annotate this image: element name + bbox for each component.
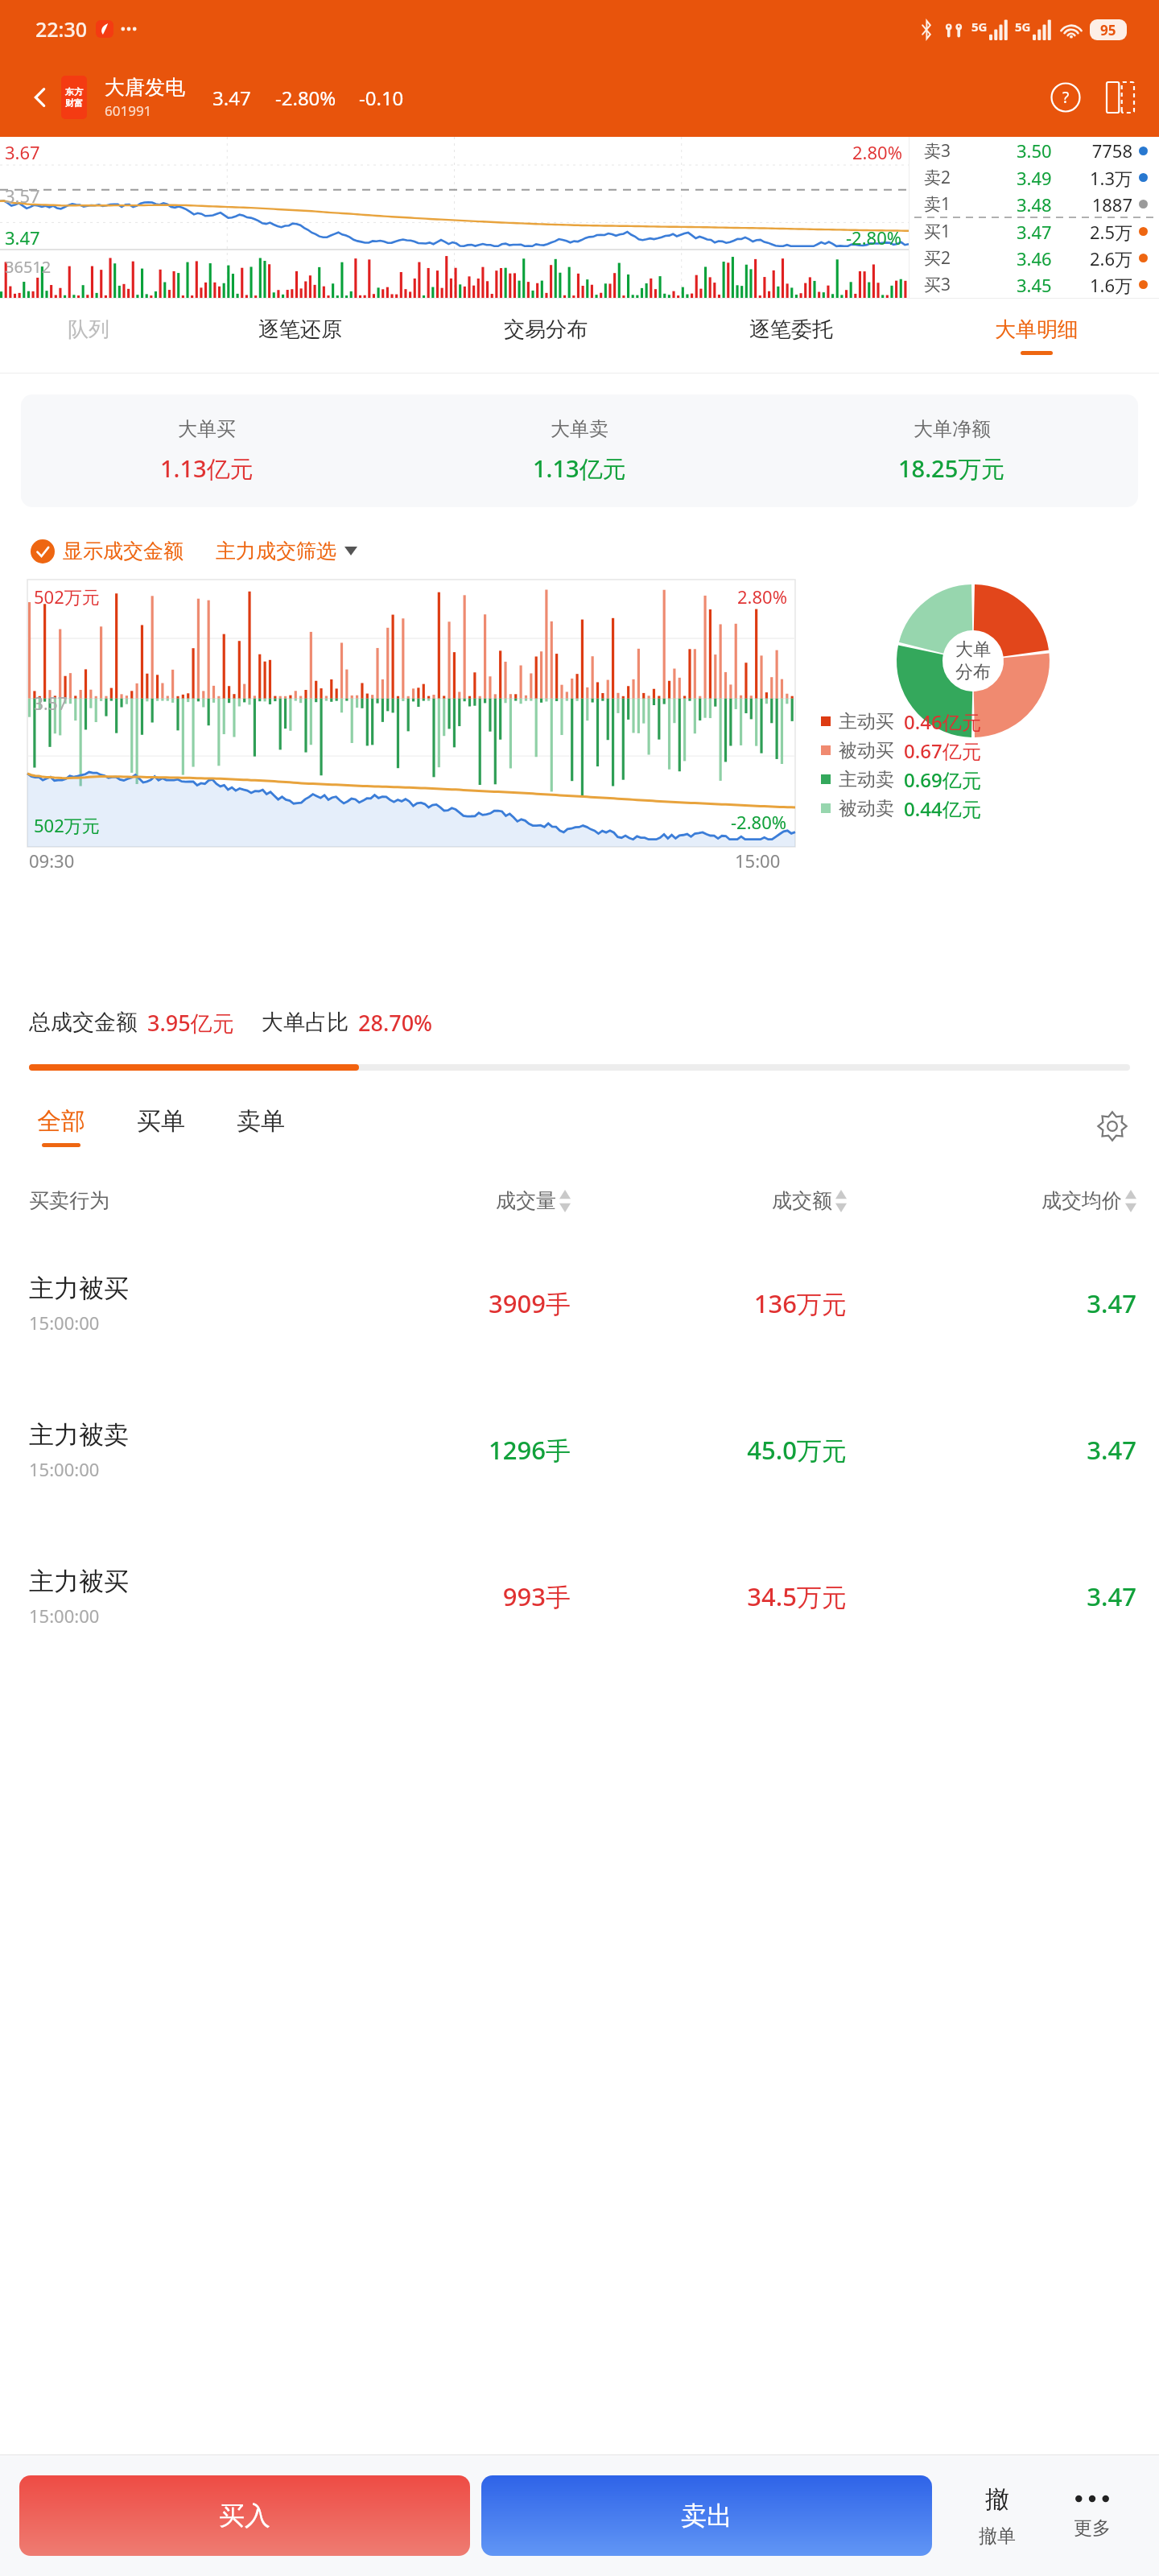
button[interactable]: 帮助 xyxy=(1046,78,1085,117)
staticText: 主力被卖 xyxy=(29,1419,129,1451)
staticText: 总成交金额 xyxy=(29,1009,138,1036)
button[interactable]: 买2 xyxy=(909,245,1159,271)
staticText: 被动买 xyxy=(839,739,894,762)
staticText: 7758 xyxy=(1066,138,1132,163)
button[interactable]: 设置 xyxy=(1090,1104,1135,1149)
button[interactable]: 逐笔委托 xyxy=(668,299,914,373)
button[interactable]: 买3 xyxy=(909,271,1159,298)
staticText: 2.5万 xyxy=(1066,220,1132,244)
staticText: -0.10 xyxy=(359,85,404,111)
button[interactable]: 大单明细 xyxy=(914,299,1159,373)
button[interactable]: 撤 xyxy=(950,2455,1045,2576)
staticText: 逐笔还原 xyxy=(258,316,342,343)
staticText: 3.49 xyxy=(1017,166,1052,190)
staticText: 3.47 xyxy=(847,1433,1136,1467)
staticText: 买入 xyxy=(219,2500,270,2532)
staticText: 主力被买 xyxy=(29,1566,129,1597)
staticText: 大唐发电 xyxy=(105,75,185,100)
staticText: 卖出 xyxy=(681,2500,732,2532)
staticText: 45.0万元 xyxy=(571,1433,847,1467)
staticText: 大单 xyxy=(955,638,991,661)
staticText: 3.67 xyxy=(5,140,40,164)
button[interactable]: 全部 xyxy=(27,1106,95,1147)
staticText: 0.69亿元 xyxy=(904,766,981,793)
staticText: 1887 xyxy=(1066,192,1132,217)
button[interactable]: 大单买 xyxy=(21,394,1138,507)
staticText: 3.46 xyxy=(1017,246,1052,270)
staticText: 1.13亿元 xyxy=(160,452,254,485)
staticText: 2.80% xyxy=(737,584,787,609)
staticText: 卖1 xyxy=(924,192,951,216)
staticText: 5G xyxy=(971,19,988,35)
staticText: 成交量 xyxy=(496,1188,556,1213)
staticText: 36512 xyxy=(5,256,52,278)
button[interactable]: 卖出 xyxy=(481,2475,932,2556)
staticText: 3.50 xyxy=(1017,138,1052,163)
staticText: 被动卖 xyxy=(839,797,894,820)
button[interactable]: 队列 xyxy=(0,299,177,373)
button[interactable]: 主动卖 xyxy=(821,765,1143,794)
staticText: 3.48 xyxy=(1017,192,1052,217)
staticText: 买2 xyxy=(924,246,951,270)
button[interactable]: 卖单 xyxy=(227,1106,295,1147)
button[interactable]: 主力被买 xyxy=(0,1523,1159,1670)
button[interactable]: 交易分布 xyxy=(423,299,668,373)
staticText: 大单占比 xyxy=(262,1009,349,1036)
staticText: 5G xyxy=(1015,19,1031,35)
staticText: 22:30 xyxy=(35,15,88,43)
staticText: 大单净额 xyxy=(914,417,991,441)
button[interactable]: 买入 xyxy=(19,2475,470,2556)
staticText: 撤 xyxy=(985,2484,1009,2515)
staticText: 2.6万 xyxy=(1066,246,1132,270)
staticText: 3.57 xyxy=(5,184,40,208)
button[interactable]: 买1 xyxy=(909,218,1159,245)
staticText: 15:00:00 xyxy=(29,1604,100,1628)
staticText: 28.70% xyxy=(358,1008,433,1038)
staticText: 3.47 xyxy=(847,1286,1136,1320)
staticText: 3.45 xyxy=(1017,273,1052,297)
staticText: 3.47 xyxy=(212,85,251,111)
button[interactable]: 成交额 xyxy=(571,1188,847,1213)
staticText: 3.57 xyxy=(34,692,68,716)
button[interactable]: 主力成交筛选 xyxy=(216,539,357,563)
button[interactable]: 买单 xyxy=(127,1106,195,1147)
button[interactable]: 主力被卖 xyxy=(0,1377,1159,1523)
staticText: 0.46亿元 xyxy=(904,708,981,735)
staticText: 3.95亿元 xyxy=(147,1008,234,1038)
staticText: 成交均价 xyxy=(1041,1188,1122,1213)
button[interactable]: 逐笔还原 xyxy=(177,299,423,373)
button[interactable]: 显示成交金额 xyxy=(31,539,184,563)
button[interactable]: 更多 xyxy=(1101,78,1140,117)
button[interactable]: 成交均价 xyxy=(847,1188,1136,1213)
staticText: 主动卖 xyxy=(839,768,894,791)
staticText: 东方 xyxy=(65,86,83,97)
staticText: 1.13亿元 xyxy=(533,452,626,485)
button[interactable]: 卖2 xyxy=(909,164,1159,191)
staticText: 大单卖 xyxy=(551,417,608,441)
staticText: 大单买 xyxy=(178,417,236,441)
staticText: 逐笔委托 xyxy=(749,316,833,343)
staticText: 15:00 xyxy=(735,848,781,873)
staticText: 买3 xyxy=(924,273,951,296)
staticText: 1.6万 xyxy=(1066,273,1132,297)
staticText: 18.25万元 xyxy=(898,452,1005,485)
button[interactable]: 卖1 xyxy=(909,191,1159,217)
button[interactable]: 返回 xyxy=(19,76,61,118)
button[interactable]: 主力被买 xyxy=(0,1230,1159,1377)
staticText: 显示成交金额 xyxy=(63,539,184,563)
button[interactable]: 主动买 xyxy=(821,707,1143,736)
staticText: 全部 xyxy=(37,1106,85,1137)
staticText: 2.80% xyxy=(852,140,902,164)
button[interactable]: 卖3 xyxy=(909,137,1159,164)
staticText: 队列 xyxy=(68,316,109,343)
button[interactable]: 被动买 xyxy=(821,736,1143,765)
staticText: 买单 xyxy=(137,1106,185,1137)
button[interactable]: 被动卖 xyxy=(821,794,1143,823)
button[interactable]: 成交量 xyxy=(295,1188,571,1213)
button[interactable]: 更多 xyxy=(1045,2455,1140,2576)
staticText: 0.67亿元 xyxy=(904,737,981,764)
staticText: 买卖行为 xyxy=(29,1188,295,1213)
staticText: 主动买 xyxy=(839,710,894,733)
staticText: 更多 xyxy=(1074,2516,1111,2540)
staticText: 买1 xyxy=(924,220,951,243)
